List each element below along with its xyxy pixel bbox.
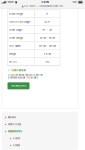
staticText: 4:44 PM [41,1,49,3]
button[interactable]: Alpine [3,135,77,142]
staticText: Reviews [8,116,16,119]
staticText: Let Off [9,60,17,63]
staticText: 50 lbs - 59 lbs [40,36,55,39]
staticText: Draw Weight [9,36,23,39]
staticText: 75% [45,60,49,63]
button[interactable]: EXPLORE ALL SPECS [7,82,29,89]
staticText: EXPLORE ALL SPECS [11,85,26,87]
staticText: Axle to Axle Length [9,20,30,23]
staticText: 32.75" [44,20,50,23]
button[interactable]: Athens [3,142,77,149]
button[interactable]: Reviews [3,114,77,121]
staticText: Alpine [13,137,20,140]
button[interactable]: + 1 more version [2,66,25,72]
staticText: Diamond Nuclear Ice on sale [7,76,37,79]
staticText: 310 fps - 330 fps [39,44,56,47]
staticText: Not Secure — compoundbowschoice.com [24,5,63,7]
button[interactable]: Where to buy [3,121,77,128]
staticText: Weight [9,52,16,55]
staticText: Manufacturers [8,130,22,133]
staticText: Draw Length [9,28,22,31]
staticText: Athens [13,144,20,147]
staticText: Where to buy [8,123,21,126]
staticText: 100% [72,1,77,3]
staticText: 3.8 lbs [44,52,51,55]
staticText: Brace Height [9,12,23,15]
staticText: Verizon [7,1,13,3]
staticText: IBO Speed [9,44,20,47]
staticText: + 1 more version [7,69,25,72]
button[interactable]: Manufacturers [3,128,77,135]
staticText: 6" [46,12,48,15]
staticText: 24" - 26" [42,28,52,31]
staticText: Click the below button to see the [7,73,42,76]
